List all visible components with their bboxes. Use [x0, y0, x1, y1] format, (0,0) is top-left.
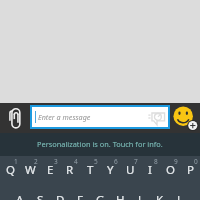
- staticText: W: [25, 162, 36, 178]
- staticText: A: [16, 192, 24, 200]
- staticText: 4: [74, 157, 78, 166]
- staticText: 5: [94, 157, 98, 166]
- staticText: 1: [14, 157, 18, 166]
- button[interactable]: T: [80, 156, 100, 188]
- button[interactable]: Enter a message: [30, 105, 170, 129]
- staticText: 6: [114, 157, 118, 166]
- staticText: Personalization is on. Touch for info.: [37, 139, 163, 149]
- staticText: Q: [6, 162, 15, 178]
- button[interactable]: A: [10, 188, 30, 200]
- staticText: H: [116, 192, 125, 200]
- staticText: P: [187, 162, 194, 178]
- staticText: U: [126, 162, 135, 178]
- staticText: 0: [194, 157, 198, 166]
- staticText: J: [138, 192, 142, 200]
- button[interactable]: R: [60, 156, 80, 188]
- staticText: R: [66, 162, 74, 178]
- button[interactable]: Personalization is on. Touch for info.: [0, 133, 200, 156]
- staticText: Enter a message: [38, 112, 91, 122]
- staticText: 3: [54, 157, 58, 166]
- staticText: 2: [34, 157, 38, 166]
- staticText: E: [47, 162, 54, 178]
- button[interactable]: L: [170, 188, 190, 200]
- button[interactable]: H: [110, 188, 130, 200]
- button[interactable]: F: [70, 188, 90, 200]
- button[interactable]: O: [160, 156, 180, 188]
- staticText: G: [96, 192, 105, 200]
- staticText: S: [37, 192, 44, 200]
- staticText: F: [77, 192, 83, 200]
- button[interactable]: E: [40, 156, 60, 188]
- button[interactable]: D: [50, 188, 70, 200]
- button[interactable]: W: [20, 156, 40, 188]
- button[interactable]: I: [140, 156, 160, 188]
- staticText: D: [56, 192, 65, 200]
- staticText: 7: [134, 157, 138, 166]
- button[interactable]: U: [120, 156, 140, 188]
- staticText: L: [177, 192, 184, 200]
- staticText: T: [87, 162, 94, 178]
- button[interactable]: Attach file: [0, 103, 30, 133]
- button[interactable]: J: [130, 188, 150, 200]
- staticText: 9: [174, 157, 178, 166]
- button[interactable]: P: [180, 156, 200, 188]
- button[interactable]: S: [30, 188, 50, 200]
- button[interactable]: G: [90, 188, 110, 200]
- staticText: I: [148, 162, 152, 178]
- button[interactable]: Q: [0, 156, 20, 188]
- button[interactable]: Y: [100, 156, 120, 188]
- button[interactable]: K: [150, 188, 170, 200]
- staticText: K: [156, 192, 164, 200]
- button[interactable]: Add emoji: [170, 103, 200, 133]
- staticText: 8: [154, 157, 158, 166]
- staticText: O: [166, 162, 175, 178]
- staticText: Y: [107, 162, 114, 178]
